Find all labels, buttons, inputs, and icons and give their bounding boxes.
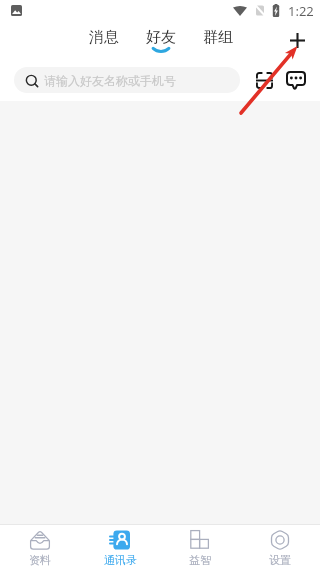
staticText: 设置 <box>269 553 291 567</box>
button[interactable]: 群组 <box>199 22 237 56</box>
button[interactable]: Messages <box>282 66 310 94</box>
staticText: 益智 <box>189 553 211 567</box>
button[interactable]: Add friend <box>284 27 310 53</box>
button[interactable]: 资料 <box>0 525 80 568</box>
staticText: 1:22 <box>288 2 314 20</box>
button[interactable]: 设置 <box>240 525 320 568</box>
staticText: 请输入好友名称或手机号 <box>44 73 176 88</box>
button[interactable]: 益智 <box>160 525 240 568</box>
button[interactable]: 通讯录 <box>80 525 160 568</box>
button[interactable]: 请输入好友名称或手机号 <box>14 67 240 93</box>
staticText: 好友 <box>146 28 176 47</box>
button[interactable]: 好友 <box>142 22 180 56</box>
button[interactable]: 消息 <box>85 22 123 56</box>
button[interactable]: Scan QR code <box>250 66 278 94</box>
staticText: 通讯录 <box>104 553 137 567</box>
staticText: 资料 <box>29 553 51 567</box>
staticText: 群组 <box>203 28 233 47</box>
staticText: 消息 <box>89 28 119 47</box>
